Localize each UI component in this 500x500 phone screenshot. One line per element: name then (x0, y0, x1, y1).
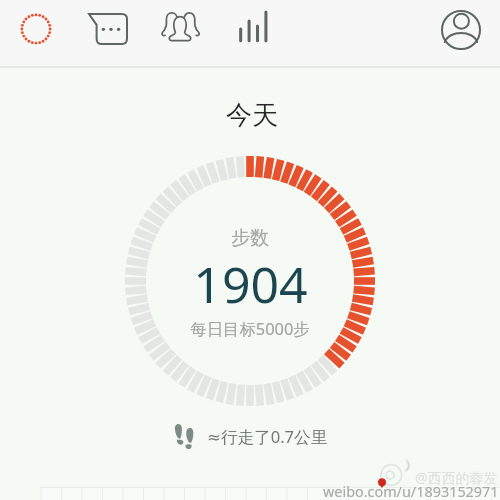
staticText: 步数 (231, 226, 269, 250)
staticText: ≈行走了0.7公里 (207, 425, 328, 448)
staticText: @西西的蓉发 (415, 468, 498, 487)
button[interactable]: Profile (434, 3, 488, 57)
staticText: 每日目标5000步 (190, 317, 310, 339)
button[interactable]: Activity (9, 2, 63, 56)
staticText: 今天 (226, 99, 278, 132)
button[interactable]: Messages (81, 2, 135, 56)
button[interactable]: ≈行走了0.7公里 (174, 420, 332, 452)
button[interactable]: Friends (153, 2, 207, 56)
staticText: weibo.com/u/1893152971 (323, 482, 499, 500)
staticText: 1904 (193, 250, 308, 318)
button[interactable]: Statistics (226, 1, 280, 55)
